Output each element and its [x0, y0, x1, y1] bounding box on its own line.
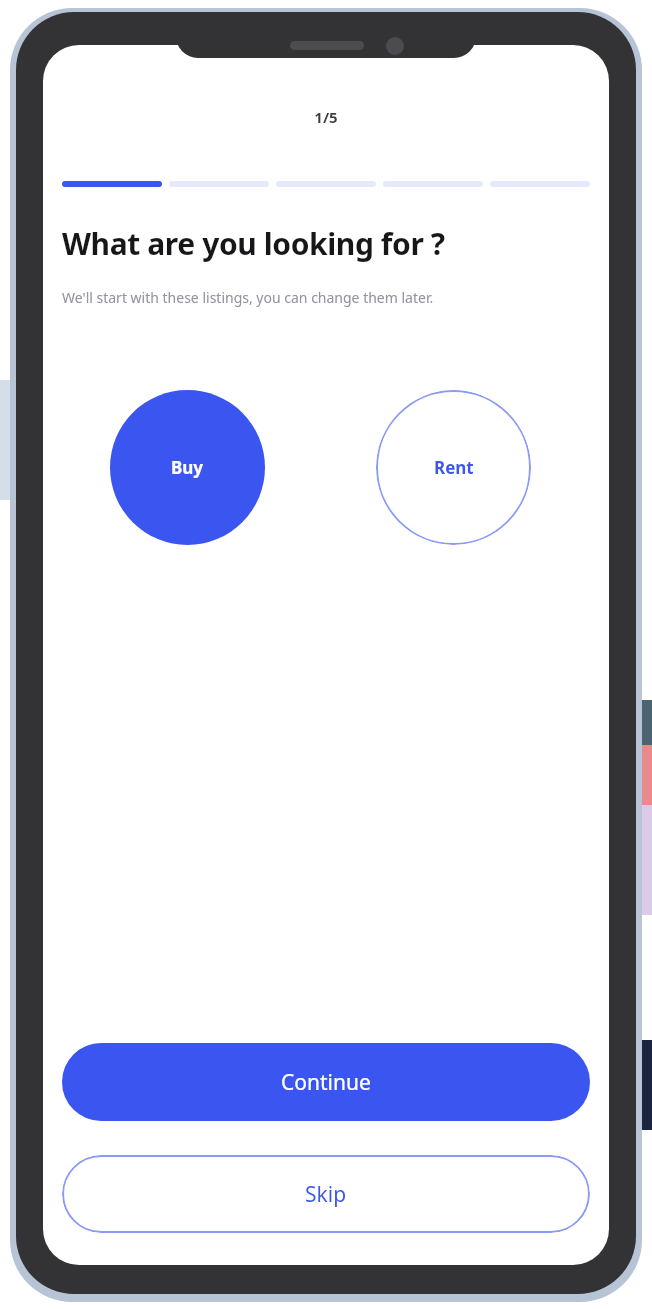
staticText: Skip: [305, 1180, 347, 1209]
button[interactable]: Rent: [376, 390, 531, 545]
staticText: Continue: [281, 1068, 371, 1097]
staticText: 1/5: [314, 107, 338, 127]
button[interactable]: Continue: [62, 1043, 590, 1121]
staticText: What are you looking for ?: [62, 223, 445, 264]
button[interactable]: Skip: [62, 1155, 590, 1233]
staticText: We'll start with these listings, you can…: [62, 288, 434, 307]
staticText: Rent: [434, 456, 474, 479]
staticText: Buy: [171, 456, 204, 479]
button[interactable]: Buy: [110, 390, 265, 545]
